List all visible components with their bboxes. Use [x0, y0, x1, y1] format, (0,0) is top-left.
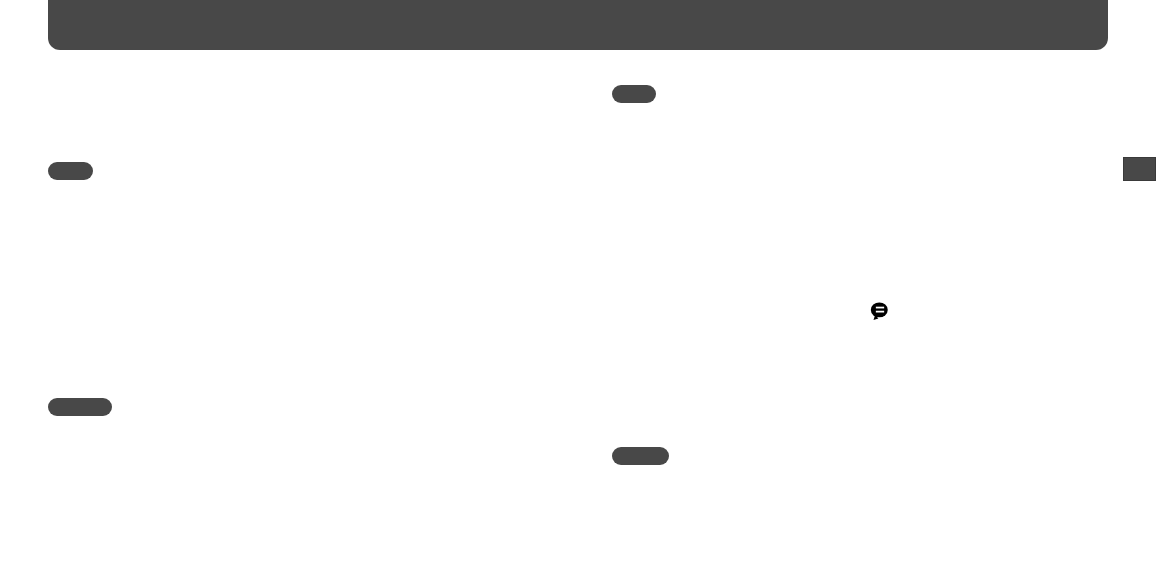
button[interactable]: Row label: [48, 398, 112, 416]
button[interactable]: App bar: [48, 0, 1108, 50]
button[interactable]: Row value: [612, 447, 669, 465]
button[interactable]: Messages: [870, 301, 890, 321]
button[interactable]: List heading: [48, 162, 93, 180]
button[interactable]: Section title: [612, 85, 656, 103]
button[interactable]: More options: [1123, 157, 1156, 181]
